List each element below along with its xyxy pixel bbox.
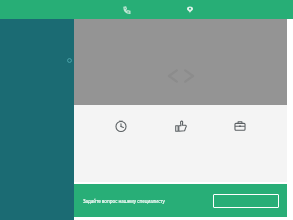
button[interactable]: Work bbox=[227, 113, 253, 139]
button[interactable]: History bbox=[108, 113, 134, 139]
button[interactable]: Location bbox=[181, 1, 199, 19]
staticText: Задайте вопрос нашему специалисту bbox=[83, 198, 165, 204]
button[interactable]: Call bbox=[118, 1, 136, 19]
button[interactable]: Like bbox=[168, 113, 194, 139]
button[interactable]: Ask a question bbox=[213, 194, 279, 208]
